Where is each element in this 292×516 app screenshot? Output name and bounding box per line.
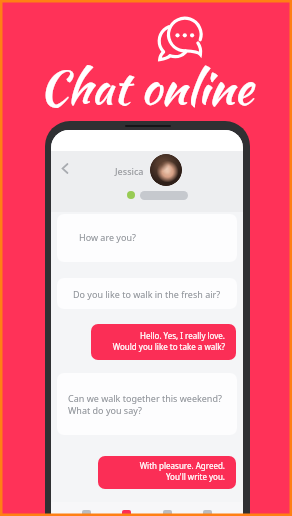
button[interactable]: Hello. Yes, I really love. xyxy=(91,324,236,360)
staticText: You'll write you. xyxy=(165,471,225,482)
button[interactable]: Can we walk together this weekend? xyxy=(57,373,237,435)
button[interactable]: Tab xyxy=(122,510,131,516)
staticText: Jessica xyxy=(115,165,144,177)
button[interactable]: With pleasure. Agreed. xyxy=(98,456,236,489)
button[interactable]: Tab xyxy=(82,510,91,516)
staticText: With pleasure. Agreed. xyxy=(139,460,225,471)
staticText: Hello. Yes, I really love. xyxy=(139,330,225,341)
button[interactable]: How are you? xyxy=(57,214,237,262)
button[interactable]: Tab xyxy=(163,510,172,516)
staticText: Would you like to take a walk? xyxy=(112,341,225,352)
staticText: Can we walk together this weekend? xyxy=(68,392,222,404)
staticText: Chat online xyxy=(0,53,292,121)
button[interactable]: Back xyxy=(57,160,73,176)
staticText: How are you? xyxy=(79,231,136,243)
staticText: Do you like to walk in the fresh air? xyxy=(73,288,221,300)
staticText: What do you say? xyxy=(68,404,142,416)
button[interactable]: Tab xyxy=(203,510,212,516)
button[interactable]: Do you like to walk in the fresh air? xyxy=(57,278,237,309)
